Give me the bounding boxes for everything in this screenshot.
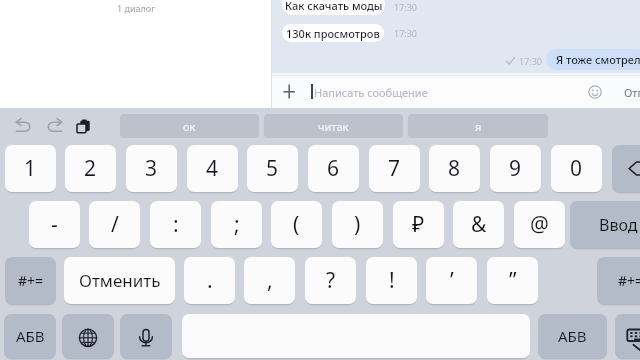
staticText: ” [509, 266, 517, 295]
staticText: ? [326, 266, 336, 295]
button[interactable]: Как скачать моды [282, 0, 385, 15]
staticText: - [51, 210, 58, 239]
staticText: & [471, 210, 487, 239]
button[interactable]: 5 [247, 145, 298, 192]
button[interactable]: я [408, 114, 548, 138]
button[interactable]: Change language [62, 314, 114, 358]
staticText: АБВ [558, 326, 587, 346]
button[interactable]: Redo [42, 116, 66, 138]
staticText: @ [530, 210, 549, 239]
button[interactable]: Hide keyboard [615, 314, 640, 358]
staticText: Отп [624, 85, 640, 100]
staticText: 17:30 [394, 27, 418, 39]
button[interactable]: 8 [429, 145, 480, 192]
staticText: ок [183, 119, 196, 134]
button[interactable]: Отменить [64, 257, 175, 304]
staticText: ₽ [412, 210, 425, 239]
button[interactable]: / [89, 201, 140, 248]
staticText: Написать сообщение [314, 85, 428, 100]
staticText: ( [293, 210, 300, 239]
button[interactable]: Backspace [612, 145, 640, 192]
staticText: #+= [618, 271, 640, 290]
button[interactable]: ’ [426, 257, 477, 304]
button[interactable]: ₽ [393, 201, 444, 248]
button[interactable]: Я тоже смотрел к [546, 49, 640, 70]
button[interactable]: ) [332, 201, 383, 248]
button[interactable]: 1 [5, 145, 56, 192]
staticText: АБВ [16, 326, 45, 346]
staticText: 130к просмотров [286, 26, 380, 41]
staticText: Я тоже смотрел к [556, 52, 640, 67]
button[interactable]: : [150, 201, 201, 248]
staticText: 17:30 [519, 55, 543, 67]
button[interactable]: АБВ [4, 314, 56, 358]
button[interactable]: . [184, 257, 235, 304]
button[interactable]: Attach [282, 82, 298, 102]
staticText: : [173, 210, 179, 239]
button[interactable]: 2 [65, 145, 116, 192]
staticText: 3 [145, 154, 158, 183]
staticText: 9 [509, 154, 522, 183]
staticText: 1 диалог [117, 2, 156, 14]
staticText: 1 [24, 154, 37, 183]
staticText: 4 [206, 154, 219, 183]
button[interactable]: Ввод [570, 201, 640, 248]
button[interactable]: Emoji [588, 85, 602, 99]
staticText: я [475, 119, 482, 134]
button[interactable]: читак [264, 114, 403, 138]
button[interactable]: , [244, 257, 295, 304]
staticText: 5 [266, 154, 279, 183]
button[interactable]: ок [120, 114, 259, 138]
staticText: читак [318, 119, 349, 134]
staticText: ! [389, 266, 395, 295]
button[interactable]: 9 [490, 145, 541, 192]
button[interactable]: 0 [551, 145, 602, 192]
staticText: 7 [388, 154, 401, 183]
button[interactable]: АБВ [538, 314, 607, 358]
staticText: Как скачать моды [285, 0, 383, 13]
button[interactable]: 7 [369, 145, 420, 192]
staticText: , [267, 266, 273, 295]
staticText: . [207, 266, 213, 295]
button[interactable]: - [29, 201, 80, 248]
button[interactable]: 3 [126, 145, 177, 192]
button[interactable]: @ [514, 201, 565, 248]
button[interactable]: 130к просмотров [282, 24, 384, 42]
staticText: 8 [448, 154, 461, 183]
staticText: ’ [450, 266, 454, 295]
button[interactable]: ( [271, 201, 322, 248]
button[interactable]: ? [305, 257, 356, 304]
staticText: #+= [18, 271, 44, 290]
button[interactable]: #+= [597, 257, 640, 304]
staticText: 6 [327, 154, 340, 183]
staticText: 0 [570, 154, 583, 183]
staticText: / [111, 210, 119, 239]
button[interactable]: & [453, 201, 504, 248]
staticText: Отменить [79, 269, 161, 292]
staticText: Ввод [599, 214, 638, 236]
staticText: ) [354, 210, 361, 239]
button[interactable] [306, 80, 608, 103]
staticText: 2 [84, 154, 97, 183]
button[interactable]: Clipboard [74, 116, 96, 138]
button[interactable]: ; [211, 201, 262, 248]
button[interactable]: Voice input [120, 314, 172, 358]
button[interactable]: ” [487, 257, 538, 304]
button[interactable]: 4 [187, 145, 238, 192]
button[interactable]: #+= [5, 257, 56, 304]
button[interactable]: ! [366, 257, 417, 304]
button[interactable]: 6 [308, 145, 359, 192]
button[interactable]: Undo [12, 116, 36, 138]
staticText: ; [234, 210, 240, 239]
staticText: 17:30 [394, 1, 418, 13]
